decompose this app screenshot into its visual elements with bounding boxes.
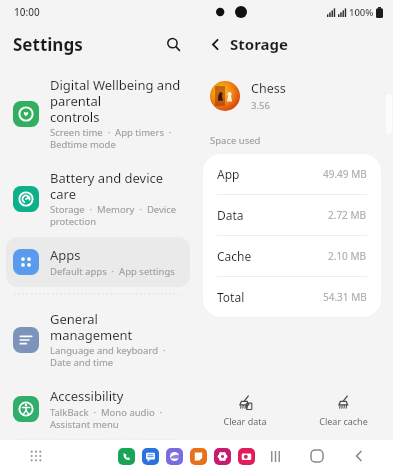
staticText: TalkBack · Mono audio · Assistant menu	[50, 406, 183, 431]
button[interactable]: Notes	[190, 448, 207, 465]
staticText: Settings	[13, 33, 83, 56]
staticText: 54.31 MB	[323, 290, 367, 304]
staticText: Language and keyboard · Date and time	[50, 344, 183, 369]
staticText: Space used	[210, 134, 261, 147]
staticText: General management	[50, 310, 183, 343]
button[interactable]: Search	[160, 31, 186, 57]
button[interactable]: Chess	[210, 80, 393, 112]
staticText: Clear data	[223, 415, 267, 427]
staticText: Cache	[217, 248, 252, 264]
button[interactable]: Cache	[203, 236, 381, 277]
staticText: Default apps · App settings	[50, 265, 175, 278]
button[interactable]: Back	[349, 446, 369, 466]
button[interactable]: Battery and device care	[6, 160, 190, 237]
staticText: 49.49 MB	[323, 167, 367, 181]
staticText: Chess	[251, 80, 286, 97]
button[interactable]: Recents	[265, 446, 285, 466]
staticText: Battery and device care	[50, 169, 183, 202]
staticText: Storage	[230, 34, 288, 54]
button[interactable]: Clear data	[196, 388, 294, 432]
staticText: Clear cache	[319, 415, 368, 427]
button[interactable]: Internet	[166, 448, 183, 465]
button[interactable]: Camera	[238, 448, 255, 465]
staticText: Total	[217, 289, 245, 305]
button[interactable]: Digital Wellbeing and parental controls	[6, 67, 190, 160]
button[interactable]: Data	[203, 195, 381, 236]
staticText: Data	[217, 207, 244, 223]
staticText: Screen time · App timers · Bedtime mode	[50, 126, 183, 151]
button[interactable]: Back	[204, 33, 226, 55]
staticText: Digital Wellbeing and parental controls	[50, 76, 183, 125]
staticText: 3.56	[251, 99, 270, 112]
staticText: 10:00	[14, 5, 40, 19]
button[interactable]: Total	[203, 277, 381, 317]
staticText: 2.10 MB	[328, 249, 367, 263]
button[interactable]: Apps	[6, 237, 190, 287]
staticText: Storage · Memory · Device protection	[50, 203, 183, 228]
button[interactable]: Home	[307, 446, 327, 466]
staticText: 100%	[349, 6, 374, 19]
button[interactable]: General management	[6, 301, 190, 378]
button[interactable]: Messages	[142, 448, 159, 465]
button[interactable]: Accessibility	[6, 378, 190, 440]
button[interactable]: App	[203, 154, 381, 195]
staticText: 2.72 MB	[328, 208, 367, 222]
staticText: Apps	[50, 246, 81, 264]
staticText: App	[217, 166, 240, 182]
button[interactable]: Clear cache	[294, 388, 393, 432]
button[interactable]: Phone	[118, 448, 135, 465]
button[interactable]: Apps list	[26, 446, 46, 466]
staticText: Accessibility	[50, 387, 124, 405]
button[interactable]: Gallery	[214, 448, 231, 465]
